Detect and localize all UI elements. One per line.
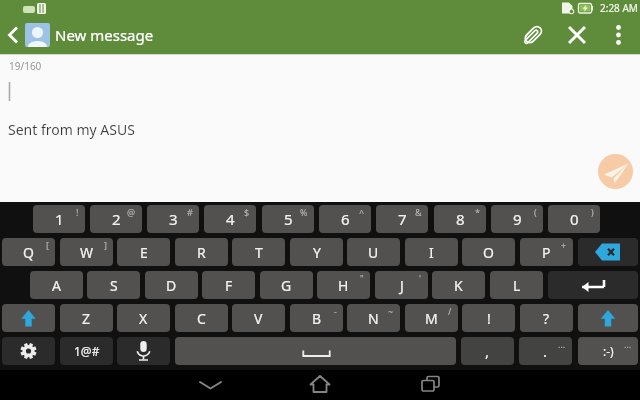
button[interactable]: F bbox=[202, 271, 255, 299]
staticText: 8 bbox=[456, 209, 465, 229]
button[interactable] bbox=[117, 337, 170, 365]
button[interactable]: Y bbox=[290, 238, 343, 266]
button[interactable]: E bbox=[117, 238, 170, 266]
button[interactable]: C bbox=[175, 304, 228, 332]
staticText: ! bbox=[487, 309, 491, 328]
button[interactable] bbox=[548, 271, 638, 299]
button[interactable]: X bbox=[117, 304, 170, 332]
staticText: % bbox=[300, 206, 308, 218]
button[interactable]: R bbox=[175, 238, 228, 266]
button[interactable]: T bbox=[232, 238, 285, 266]
staticText: 2 bbox=[112, 209, 121, 229]
button[interactable]: 0 bbox=[548, 205, 600, 233]
button[interactable] bbox=[578, 304, 638, 332]
button[interactable]: 9 bbox=[491, 205, 543, 233]
button[interactable] bbox=[2, 304, 55, 332]
button[interactable]: B bbox=[290, 304, 343, 332]
button[interactable]: :-) bbox=[578, 337, 638, 365]
staticText: L bbox=[513, 276, 521, 295]
button[interactable]: 8 bbox=[434, 205, 486, 233]
staticText: 19/160 bbox=[9, 59, 42, 73]
staticText: J bbox=[400, 276, 404, 295]
staticText: F bbox=[225, 276, 233, 295]
button[interactable]: 5 bbox=[262, 205, 314, 233]
staticText: M bbox=[425, 309, 438, 328]
staticText: ~ bbox=[388, 305, 394, 317]
staticText: 3 bbox=[169, 209, 178, 229]
button[interactable]: J bbox=[375, 271, 428, 299]
button[interactable] bbox=[185, 370, 235, 400]
button[interactable]: O bbox=[462, 238, 515, 266]
button[interactable]: D bbox=[145, 271, 198, 299]
staticText: S bbox=[110, 276, 118, 295]
button[interactable]: L bbox=[490, 271, 543, 299]
button[interactable]: S bbox=[87, 271, 140, 299]
staticText: 5 bbox=[284, 209, 293, 229]
button[interactable]: 1 bbox=[33, 205, 85, 233]
staticText: 2:28 AM bbox=[600, 1, 638, 15]
staticText: ( bbox=[534, 206, 537, 218]
button[interactable] bbox=[2, 337, 55, 365]
staticText: O bbox=[483, 243, 494, 262]
staticText: + bbox=[561, 239, 567, 251]
button[interactable]: G bbox=[260, 271, 313, 299]
button[interactable] bbox=[561, 19, 593, 51]
button[interactable]: 4 bbox=[204, 205, 256, 233]
button[interactable] bbox=[25, 23, 50, 47]
staticText: & bbox=[415, 206, 422, 218]
button[interactable]: ? bbox=[520, 304, 573, 332]
staticText: . bbox=[543, 341, 548, 361]
button[interactable]: 3 bbox=[147, 205, 199, 233]
staticText: 4 bbox=[226, 209, 235, 229]
staticText: ! bbox=[76, 206, 79, 218]
button[interactable]: , bbox=[461, 337, 514, 365]
staticText: D bbox=[166, 276, 177, 295]
button[interactable]: . bbox=[519, 337, 572, 365]
button[interactable]: ! bbox=[462, 304, 515, 332]
button[interactable]: U bbox=[347, 238, 400, 266]
button[interactable]: Z bbox=[60, 304, 113, 332]
staticText: " bbox=[360, 272, 364, 284]
button[interactable] bbox=[604, 16, 634, 54]
button[interactable] bbox=[598, 154, 633, 189]
staticText: H bbox=[338, 276, 349, 295]
button[interactable]: 6 bbox=[319, 205, 371, 233]
button[interactable] bbox=[578, 238, 638, 266]
staticText: Q bbox=[23, 243, 34, 262]
staticText: 7 bbox=[398, 209, 407, 229]
staticText: R bbox=[197, 243, 206, 262]
button[interactable] bbox=[295, 370, 345, 400]
staticText: ) bbox=[591, 206, 594, 218]
staticText: ' bbox=[419, 272, 422, 284]
staticText: X bbox=[139, 309, 148, 328]
button[interactable]: Q bbox=[2, 238, 55, 266]
button[interactable] bbox=[0, 16, 24, 54]
button[interactable]: M bbox=[405, 304, 458, 332]
button[interactable]: K bbox=[432, 271, 485, 299]
button[interactable] bbox=[405, 370, 455, 400]
button[interactable]: 2 bbox=[90, 205, 142, 233]
staticText: , bbox=[485, 341, 490, 361]
staticText: C bbox=[197, 309, 206, 328]
button[interactable]: H bbox=[317, 271, 370, 299]
staticText: New message bbox=[55, 25, 154, 45]
button[interactable]: A bbox=[30, 271, 83, 299]
button[interactable] bbox=[517, 19, 549, 51]
staticText: P bbox=[542, 243, 551, 262]
button[interactable]: P bbox=[520, 238, 573, 266]
button[interactable]: I bbox=[405, 238, 458, 266]
staticText: N bbox=[368, 309, 379, 328]
button[interactable]: 1@# bbox=[60, 337, 113, 365]
staticText: K bbox=[454, 276, 463, 295]
staticText: A bbox=[52, 276, 61, 295]
button[interactable] bbox=[175, 337, 456, 365]
button[interactable]: 7 bbox=[376, 205, 428, 233]
button[interactable]: W bbox=[60, 238, 113, 266]
staticText: 6 bbox=[341, 209, 350, 229]
staticText: ] bbox=[104, 239, 107, 251]
staticText: V bbox=[254, 309, 263, 328]
button[interactable]: N bbox=[347, 304, 400, 332]
button[interactable]: V bbox=[232, 304, 285, 332]
staticText: G bbox=[281, 276, 292, 295]
staticText: 1@# bbox=[74, 343, 100, 359]
